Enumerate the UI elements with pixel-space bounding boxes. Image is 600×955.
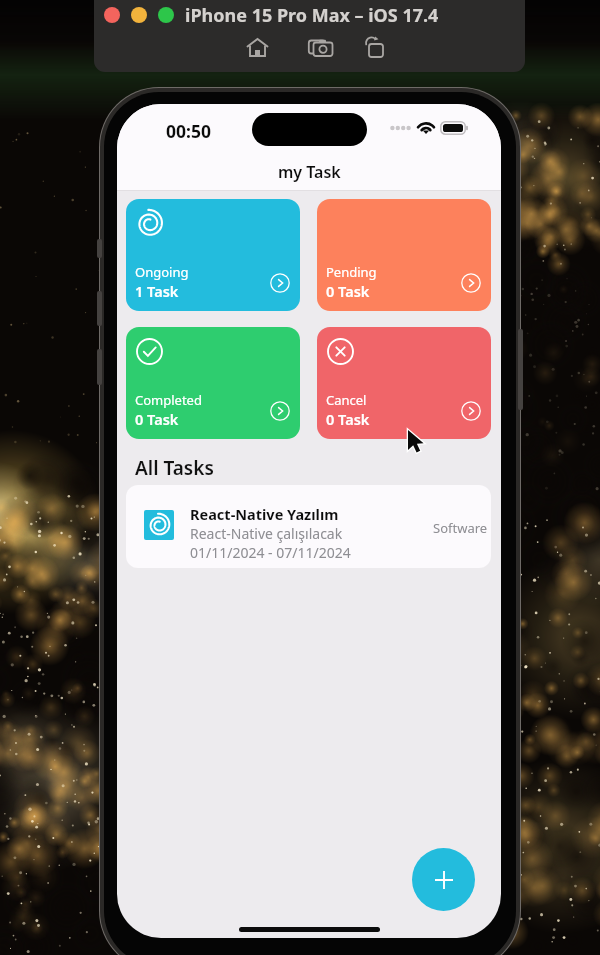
button[interactable]: Open Ongoing <box>270 273 290 293</box>
staticText: 1 Task <box>135 281 179 301</box>
staticText: 00:50 <box>166 119 211 143</box>
staticText: 0 Task <box>135 409 179 429</box>
button[interactable]: Home <box>246 37 270 59</box>
button[interactable]: Close <box>104 7 120 23</box>
staticText: Pending <box>326 263 377 281</box>
button[interactable]: Open Pending <box>461 273 481 293</box>
staticText: 01/11/2024 - 07/11/2024 <box>190 543 351 562</box>
staticText: React-Native çalışılacak <box>190 524 343 543</box>
button[interactable]: Screenshot <box>308 36 334 59</box>
staticText: React-Native Yazılım <box>190 504 339 524</box>
staticText: Completed <box>135 391 202 409</box>
staticText: Ongoing <box>135 263 189 281</box>
button[interactable]: Minimize <box>131 7 147 23</box>
button[interactable]: Pending <box>317 199 491 311</box>
button[interactable]: Zoom <box>158 7 174 23</box>
button[interactable]: Rotate <box>364 36 386 59</box>
staticText: Cancel <box>326 391 367 409</box>
button[interactable]: Open Cancel <box>461 401 481 421</box>
button[interactable]: Open Completed <box>270 401 290 421</box>
staticText: 0 Task <box>326 409 370 429</box>
staticText: Software <box>433 519 488 537</box>
staticText: All Tasks <box>135 455 214 481</box>
button[interactable]: React-Native Yazılım <box>126 485 491 568</box>
button[interactable]: Ongoing <box>126 199 300 311</box>
button[interactable]: Cancel <box>317 327 491 439</box>
staticText: my Task <box>278 161 341 183</box>
staticText: 0 Task <box>326 281 370 301</box>
button[interactable]: Completed <box>126 327 300 439</box>
staticText: iPhone 15 Pro Max – iOS 17.4 <box>185 3 439 28</box>
button[interactable]: Add task <box>412 848 475 911</box>
